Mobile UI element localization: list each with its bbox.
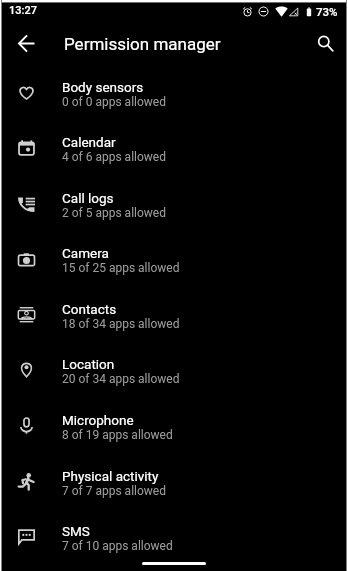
staticText: Camera bbox=[62, 245, 109, 261]
button[interactable]: SMS bbox=[0, 510, 348, 566]
button[interactable]: Search bbox=[308, 26, 342, 60]
button[interactable]: Body sensors bbox=[0, 66, 348, 122]
staticText: 7 of 10 apps allowed bbox=[62, 539, 173, 553]
staticText: Physical activity bbox=[62, 468, 159, 484]
staticText: 7 of 7 apps allowed bbox=[62, 484, 166, 498]
staticText: Microphone bbox=[62, 412, 134, 428]
button[interactable]: Location bbox=[0, 343, 348, 399]
staticText: SMS bbox=[62, 523, 90, 539]
staticText: 20 of 34 apps allowed bbox=[62, 372, 180, 386]
button[interactable]: Microphone bbox=[0, 399, 348, 455]
staticText: Permission manager bbox=[64, 34, 221, 54]
button[interactable]: Call logs bbox=[0, 177, 348, 233]
staticText: 18 of 34 apps allowed bbox=[62, 317, 180, 331]
staticText: 4 of 6 apps allowed bbox=[62, 150, 166, 164]
staticText: Call logs bbox=[62, 190, 114, 206]
staticText: 0 of 0 apps allowed bbox=[62, 95, 166, 109]
button[interactable]: Back bbox=[9, 26, 43, 60]
staticText: 2 of 5 apps allowed bbox=[62, 206, 166, 220]
button[interactable]: Physical activity bbox=[0, 455, 348, 511]
staticText: 73% bbox=[316, 5, 338, 18]
staticText: Location bbox=[62, 356, 115, 372]
button[interactable]: Contacts bbox=[0, 288, 348, 344]
staticText: 8 of 19 apps allowed bbox=[62, 428, 173, 442]
staticText: Calendar bbox=[62, 134, 116, 150]
staticText: Contacts bbox=[62, 301, 117, 317]
staticText: 13:27 bbox=[9, 4, 37, 17]
staticText: Body sensors bbox=[62, 79, 144, 95]
button[interactable]: Camera bbox=[0, 232, 348, 288]
staticText: 15 of 25 apps allowed bbox=[62, 261, 180, 275]
button[interactable]: Calendar bbox=[0, 121, 348, 177]
